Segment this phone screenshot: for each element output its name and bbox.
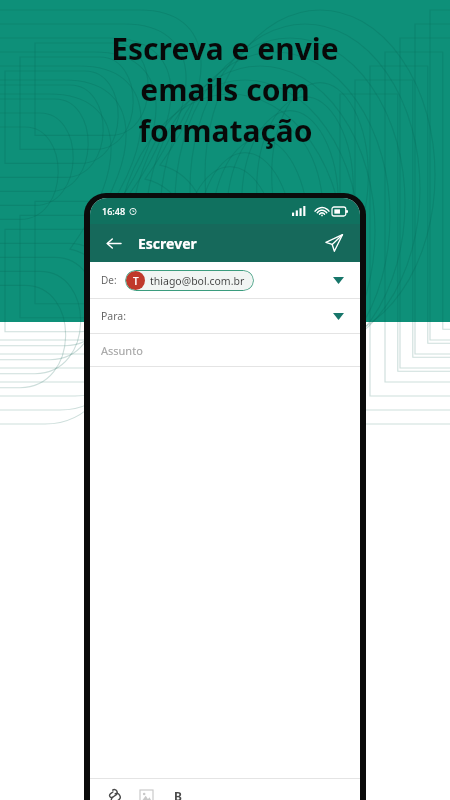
staticText: formatação bbox=[138, 110, 313, 151]
staticText: T bbox=[133, 274, 139, 288]
staticText: thiago@bol.com.br bbox=[150, 274, 245, 288]
button[interactable]: Negrito bbox=[166, 784, 190, 800]
button[interactable]: De: bbox=[90, 262, 360, 298]
staticText: De: bbox=[101, 273, 117, 287]
button[interactable]: Expandir destinatários bbox=[327, 305, 349, 327]
button[interactable]: Inserir imagem bbox=[134, 784, 158, 800]
staticText: Escrever bbox=[138, 234, 197, 253]
button[interactable]: T bbox=[125, 270, 254, 291]
button[interactable]: Enviar bbox=[320, 229, 348, 257]
staticText: B bbox=[174, 788, 182, 800]
button[interactable]: Expandir remetente bbox=[327, 269, 349, 291]
staticText: Para: bbox=[101, 309, 127, 323]
staticText: emails com bbox=[140, 69, 310, 110]
staticText: Escreva e envie bbox=[111, 28, 339, 69]
button[interactable]: Voltar bbox=[100, 230, 126, 256]
button[interactable]: Para: bbox=[90, 299, 360, 333]
button[interactable]: Assunto bbox=[90, 334, 360, 366]
staticText: Assunto bbox=[101, 343, 143, 358]
staticText: 16:48 bbox=[102, 205, 126, 217]
button[interactable]: Anexar arquivo bbox=[102, 784, 126, 800]
